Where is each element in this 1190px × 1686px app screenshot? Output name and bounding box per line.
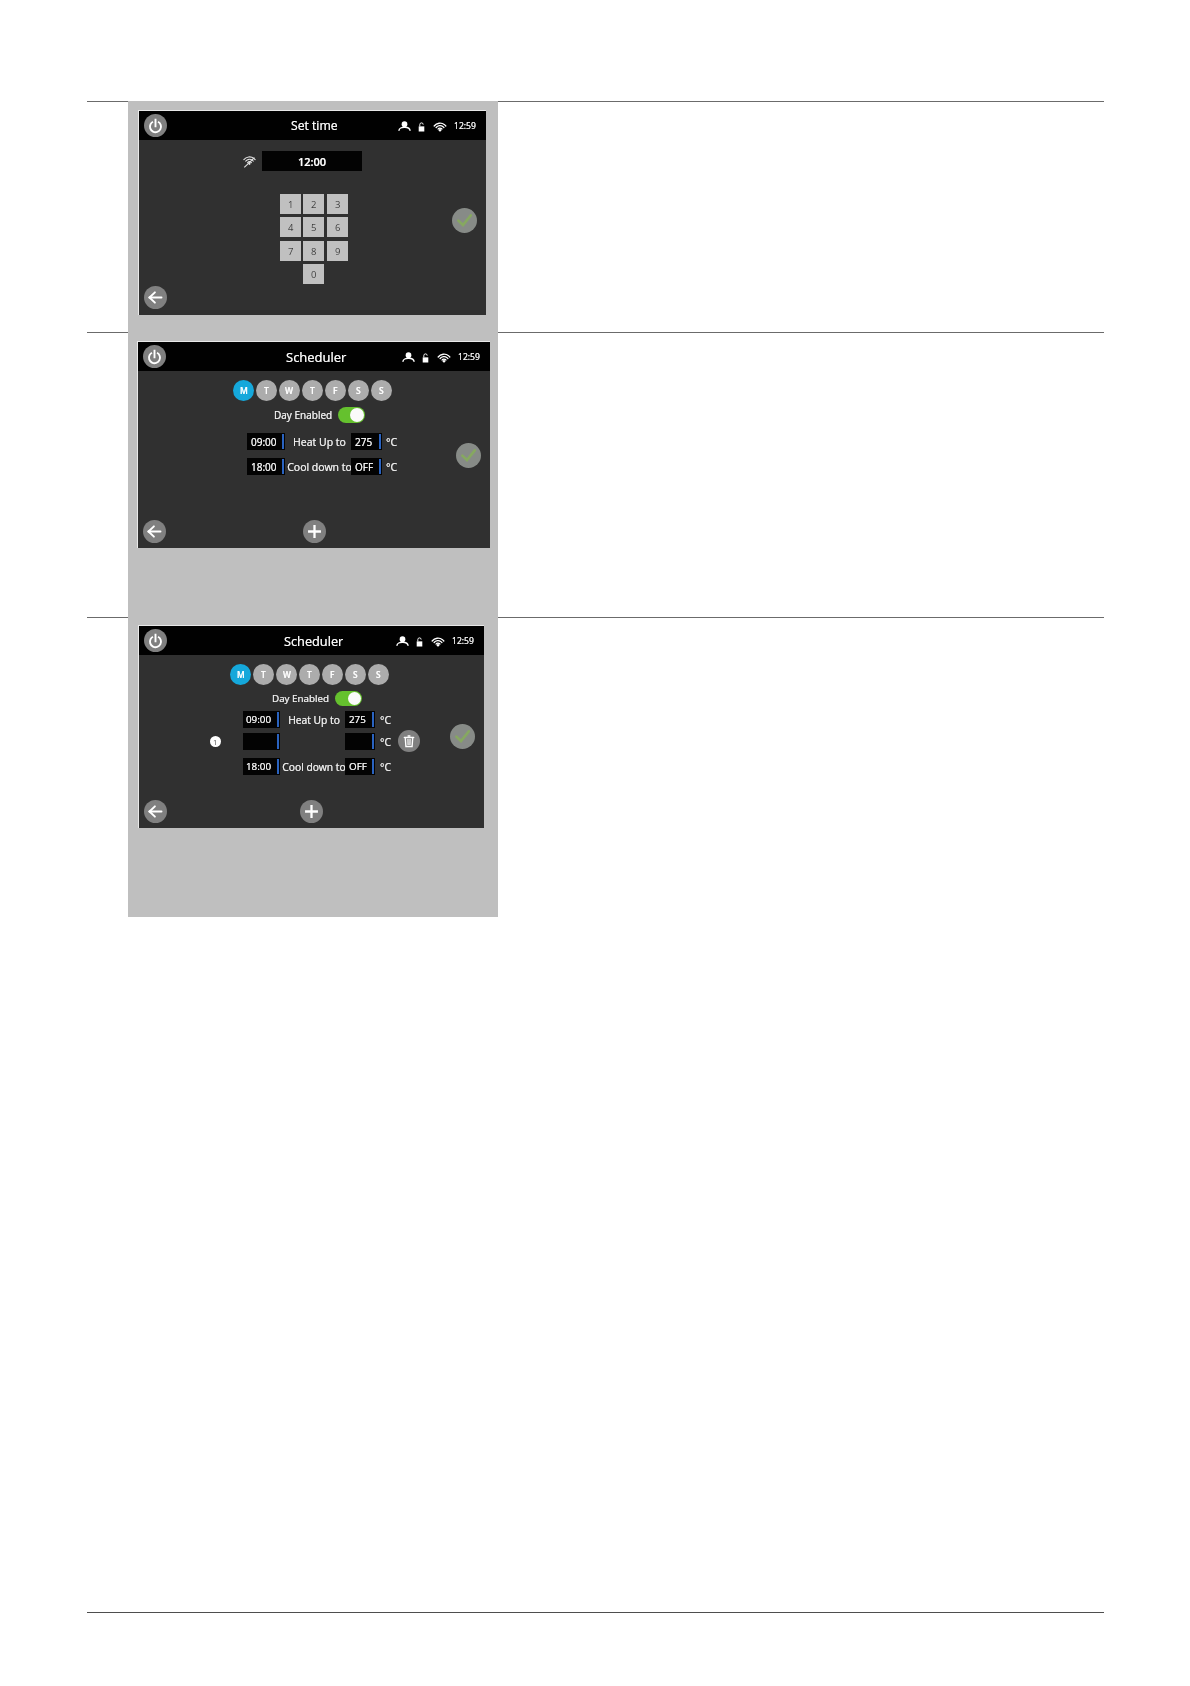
button[interactable]: S [348, 380, 369, 401]
button[interactable]: OFF [351, 458, 382, 475]
staticText: 4 [288, 221, 294, 234]
button[interactable]: 275 [345, 711, 375, 728]
staticText: 12:59 [458, 351, 480, 363]
staticText: 18:00 [251, 460, 277, 474]
staticText: T [310, 385, 315, 397]
staticText: W [285, 385, 294, 397]
button[interactable]: 09:00 [247, 433, 285, 450]
staticText: Set time [291, 117, 338, 134]
button[interactable]: M [230, 664, 251, 685]
button[interactable]: 18:00 [247, 458, 285, 475]
button[interactable]: Back [143, 520, 166, 543]
staticText: T [264, 385, 269, 397]
button[interactable]: Day enabled toggle [335, 691, 362, 706]
staticText: 7 [288, 245, 294, 258]
staticText: Cool down to [282, 760, 346, 774]
staticText: °C [380, 713, 391, 727]
button[interactable]: S [368, 664, 389, 685]
button[interactable]: 9 [327, 241, 348, 261]
button[interactable] [243, 733, 280, 750]
staticText: °C [386, 460, 398, 474]
staticText: 09:00 [251, 435, 277, 449]
button[interactable]: Delete [398, 730, 420, 752]
staticText: Scheduler [284, 632, 344, 649]
staticText: OFF [349, 760, 367, 773]
button[interactable]: OFF [345, 758, 375, 775]
staticText: 12:59 [454, 120, 476, 132]
button[interactable]: 4 [280, 217, 301, 237]
staticText: S [356, 385, 361, 397]
button[interactable]: Add [300, 800, 323, 823]
staticText: 1 [288, 198, 294, 211]
staticText: 8 [311, 245, 317, 258]
staticText: 12:00 [298, 154, 327, 169]
button[interactable]: Confirm [452, 208, 477, 233]
button[interactable]: W [279, 380, 300, 401]
button[interactable]: Add [303, 520, 326, 543]
button[interactable]: 1 [280, 194, 301, 214]
staticText: 6 [335, 221, 341, 234]
staticText: F [330, 669, 335, 680]
staticText: 5 [311, 221, 317, 234]
staticText: 275 [349, 713, 366, 726]
staticText: W [283, 669, 291, 680]
button[interactable]: Back [144, 800, 167, 823]
button[interactable]: Confirm [450, 724, 475, 749]
button[interactable]: 275 [351, 433, 382, 450]
button[interactable]: T [253, 664, 274, 685]
staticText: °C [380, 735, 391, 749]
button[interactable]: 7 [280, 241, 301, 261]
button[interactable]: Back [144, 286, 167, 309]
button[interactable]: S [345, 664, 366, 685]
staticText: 12:59 [452, 635, 474, 647]
staticText: Cool down to [287, 460, 352, 474]
button[interactable]: 18:00 [243, 758, 280, 775]
staticText: OFF [355, 460, 374, 474]
staticText: 18:00 [246, 760, 272, 773]
staticText: °C [386, 435, 398, 449]
staticText: T [307, 669, 312, 680]
staticText: Heat Up to [293, 435, 346, 449]
button[interactable]: W [276, 664, 297, 685]
staticText: Heat Up to [288, 713, 340, 727]
staticText: 2 [311, 198, 317, 211]
button[interactable]: Day enabled toggle [338, 407, 365, 423]
button[interactable]: 8 [303, 241, 324, 261]
staticText: Day Enabled [274, 408, 333, 422]
staticText: 275 [355, 435, 373, 449]
button[interactable]: Power [143, 345, 166, 368]
button[interactable]: 6 [327, 217, 348, 237]
button[interactable]: T [256, 380, 277, 401]
staticText: F [333, 385, 338, 397]
staticText: S [353, 669, 358, 680]
staticText: 3 [335, 198, 341, 211]
button[interactable]: 2 [303, 194, 324, 214]
button[interactable]: T [302, 380, 323, 401]
button[interactable]: Power [144, 114, 167, 137]
button[interactable]: Power [144, 629, 167, 652]
button[interactable]: F [322, 664, 343, 685]
staticText: S [379, 385, 384, 397]
button[interactable] [345, 733, 375, 750]
staticText: 09:00 [246, 713, 272, 726]
button[interactable]: 5 [303, 217, 324, 237]
staticText: M [237, 669, 245, 680]
button[interactable]: Confirm [456, 443, 481, 468]
button[interactable]: T [299, 664, 320, 685]
button[interactable]: M [233, 380, 254, 401]
button[interactable]: S [371, 380, 392, 401]
staticText: °C [380, 760, 391, 774]
staticText: T [261, 669, 266, 680]
staticText: 1 [213, 737, 218, 747]
button[interactable]: 12:00 [262, 151, 362, 171]
staticText: S [376, 669, 381, 680]
button[interactable]: F [325, 380, 346, 401]
staticText: 9 [335, 245, 341, 258]
button[interactable]: 0 [303, 264, 324, 284]
button[interactable]: 3 [327, 194, 348, 214]
staticText: 0 [311, 268, 317, 281]
staticText: Day Enabled [272, 692, 330, 705]
staticText: M [240, 385, 248, 397]
button[interactable]: 09:00 [243, 711, 280, 728]
staticText: Scheduler [286, 348, 347, 366]
